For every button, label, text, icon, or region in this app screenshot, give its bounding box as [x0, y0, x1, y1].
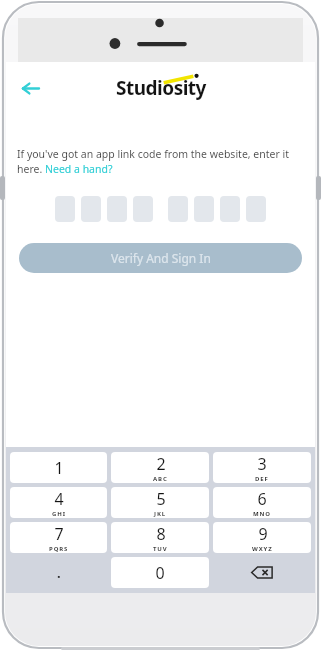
button[interactable]: Back — [12, 70, 48, 106]
button[interactable]: Backspace — [213, 557, 311, 588]
button[interactable]: 8 — [111, 522, 209, 553]
staticText: MNO — [253, 510, 271, 518]
staticText: 9 — [258, 523, 268, 545]
staticText: 5 — [156, 488, 166, 510]
button[interactable] — [246, 196, 266, 222]
staticText: TUV — [153, 545, 168, 553]
button[interactable]: 6 — [213, 487, 311, 518]
staticText: 6 — [257, 488, 267, 510]
button[interactable]: 1 — [10, 452, 107, 483]
button[interactable]: 2 — [111, 452, 209, 483]
staticText: ABC — [153, 475, 168, 483]
button[interactable] — [81, 196, 101, 222]
staticText: 7 — [54, 523, 64, 545]
button[interactable]: 4 — [10, 487, 107, 518]
button[interactable] — [107, 196, 127, 222]
button[interactable]: Period — [10, 557, 107, 588]
staticText: WXYZ — [252, 545, 273, 553]
staticText: JKL — [154, 510, 167, 518]
staticText: 4 — [54, 488, 64, 510]
staticText: DEF — [255, 475, 269, 483]
button[interactable] — [194, 196, 214, 222]
staticText: Verify And Sign In — [111, 250, 211, 266]
staticText: GHI — [52, 510, 66, 518]
staticText: PQRS — [49, 545, 69, 553]
staticText: 0 — [155, 562, 165, 584]
staticText: 2 — [156, 453, 166, 475]
button[interactable]: 9 — [213, 522, 311, 553]
staticText: 1 — [54, 457, 64, 479]
staticText: 8 — [156, 523, 166, 545]
button[interactable]: 3 — [213, 452, 311, 483]
button[interactable] — [55, 196, 75, 222]
staticText: Studiosity — [116, 75, 206, 101]
button[interactable]: Verify And Sign In — [19, 243, 302, 273]
button[interactable] — [168, 196, 188, 222]
button[interactable]: 0 — [111, 557, 209, 588]
button[interactable]: 5 — [111, 487, 209, 518]
staticText: If you've got an app link code from the … — [17, 147, 304, 176]
button[interactable] — [220, 196, 240, 222]
button[interactable]: 7 — [10, 522, 107, 553]
staticText: 3 — [257, 453, 267, 475]
button[interactable] — [133, 196, 153, 222]
staticText: . — [57, 564, 61, 582]
